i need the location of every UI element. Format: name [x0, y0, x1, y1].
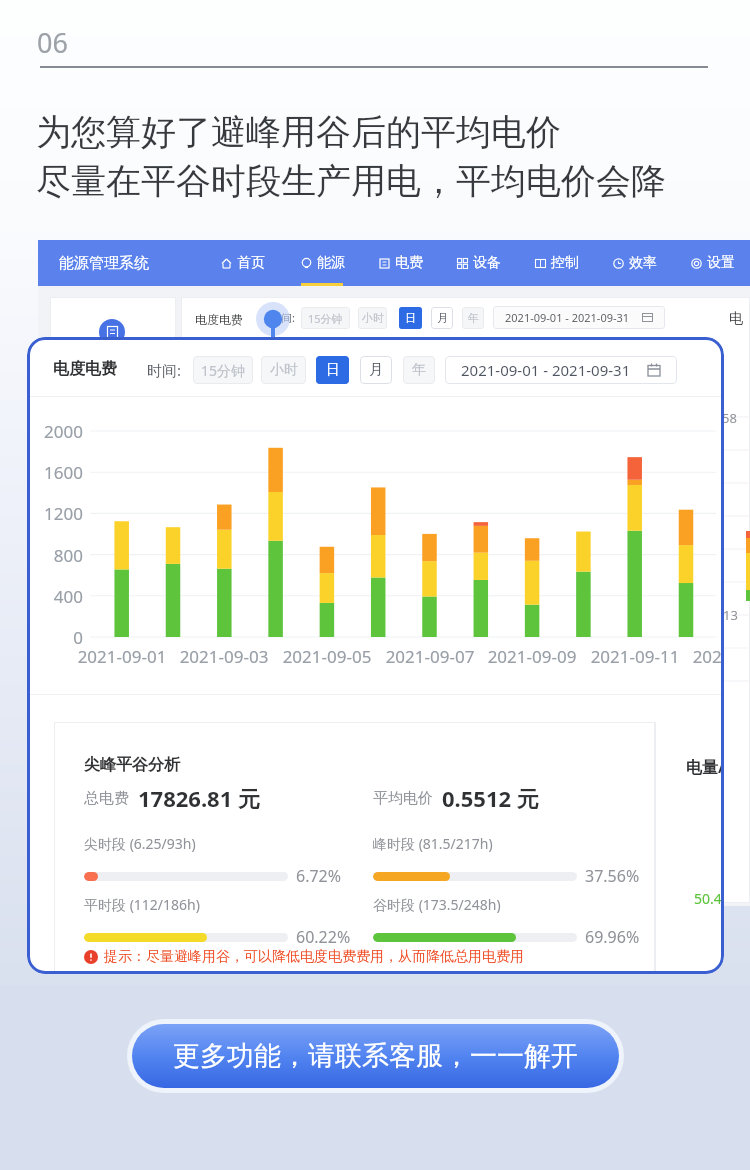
button[interactable]: 2021-09-01 - 2021-09-31: [445, 356, 677, 384]
staticText: 能源: [317, 254, 345, 272]
staticText: 06: [37, 24, 68, 61]
button[interactable]: 月: [360, 356, 392, 384]
staticText: 电量/: [686, 756, 724, 778]
button[interactable]: 年: [462, 307, 484, 329]
staticText: 2021-09-01 - 2021-09-31: [461, 360, 631, 380]
button[interactable]: 年: [403, 356, 435, 384]
staticText: 1600: [27, 461, 83, 484]
staticText: 日: [405, 311, 416, 325]
staticText: 37.56%: [585, 865, 640, 887]
staticText: 电费: [395, 254, 423, 272]
button[interactable]: 月: [431, 307, 453, 329]
staticText: 能源管理系统: [59, 254, 149, 273]
button[interactable]: 首页: [221, 240, 301, 286]
button[interactable]: 电费: [379, 240, 457, 286]
staticText: 400: [27, 585, 83, 608]
staticText: 电度电费: [195, 312, 243, 327]
staticText: 电: [729, 310, 743, 328]
staticText: 13: [723, 606, 738, 624]
button[interactable]: 能源: [301, 240, 379, 286]
staticText: 提示：尽量避峰用谷，可以降低电度电费费用，从而降低总用电费用: [104, 948, 524, 966]
button[interactable]: 小时: [261, 356, 306, 384]
staticText: 设备: [473, 254, 501, 272]
staticText: 效率: [629, 254, 657, 272]
staticText: 间:: [281, 310, 295, 325]
staticText: 2021-09-13: [682, 645, 724, 668]
staticText: 设置: [707, 254, 735, 272]
staticText: 峰时段 (81.5/217h): [373, 834, 493, 853]
staticText: 2021-09-01 - 2021-09-31: [505, 310, 630, 325]
staticText: 15分钟: [201, 361, 246, 380]
staticText: 小时: [362, 311, 384, 325]
button[interactable]: 日: [316, 356, 349, 384]
staticText: 0.5512 元: [442, 783, 539, 813]
button[interactable]: 日: [399, 307, 422, 329]
staticText: 2021-09-01: [67, 645, 177, 668]
staticText: 谷时段 (173.5/248h): [373, 895, 501, 914]
staticText: 月: [437, 311, 448, 325]
staticText: 年: [412, 361, 426, 379]
staticText: 日: [326, 361, 340, 379]
staticText: 2021-09-03: [169, 645, 279, 668]
button[interactable]: 更多功能，请联系客服，一一解开: [132, 1024, 619, 1088]
staticText: 小时: [270, 361, 298, 379]
staticText: 2021-09-09: [477, 645, 587, 668]
staticText: 总电费: [84, 789, 129, 808]
staticText: 平均电价: [373, 789, 433, 808]
button[interactable]: 设置: [691, 240, 750, 286]
staticText: 更多功能，请联系客服，一一解开: [173, 1039, 578, 1073]
staticText: 2000: [27, 420, 83, 443]
button[interactable]: 效率: [613, 240, 691, 286]
staticText: 时间:: [147, 360, 182, 380]
button[interactable]: 控制: [535, 240, 613, 286]
staticText: 尖时段 (6.25/93h): [84, 834, 196, 853]
staticText: 首页: [237, 254, 265, 272]
staticText: 为您算好了避峰用谷后的平均电价: [36, 110, 561, 154]
staticText: 1200: [27, 502, 83, 525]
staticText: 2021-09-11: [580, 645, 690, 668]
staticText: 69.96%: [585, 926, 640, 948]
staticText: 60.22%: [296, 926, 351, 948]
button[interactable]: 设备: [457, 240, 535, 286]
staticText: 电度电费: [53, 359, 117, 379]
button[interactable]: 15分钟: [193, 356, 253, 384]
button[interactable]: 15分钟: [301, 307, 350, 329]
other: Calendar: [647, 363, 661, 377]
staticText: 月: [369, 361, 383, 379]
staticText: 58: [722, 409, 737, 427]
button[interactable]: 小时: [358, 307, 387, 329]
staticText: 17826.81 元: [138, 783, 260, 813]
staticText: 控制: [551, 254, 579, 272]
staticText: 尽量在平谷时段生产用电，平均电价会降: [36, 159, 666, 203]
staticText: 50.48: [694, 889, 724, 908]
staticText: 2021-09-05: [272, 645, 382, 668]
staticText: 6.72%: [296, 865, 342, 887]
staticText: 年: [468, 311, 479, 325]
staticText: 平时段 (112/186h): [84, 895, 200, 914]
staticText: 尖峰平谷分析: [84, 755, 180, 775]
staticText: 800: [27, 544, 83, 567]
staticText: 0: [27, 626, 83, 649]
staticText: 2021-09-07: [375, 645, 485, 668]
staticText: 15分钟: [308, 311, 343, 326]
